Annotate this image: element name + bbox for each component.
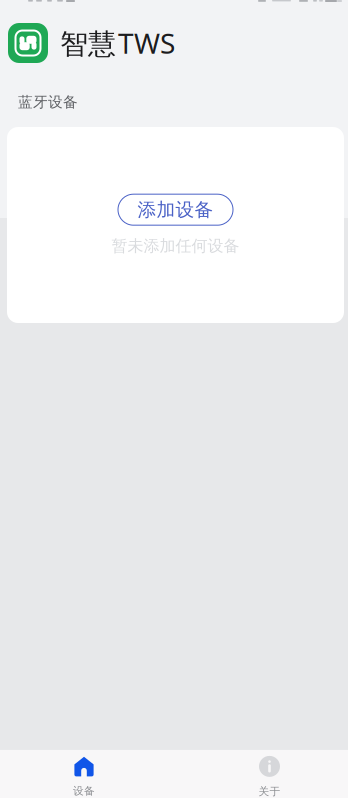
button[interactable]: 设备	[0, 756, 174, 797]
staticText: 暂未添加任何设备	[111, 236, 239, 256]
staticText: 蓝牙设备	[18, 93, 78, 111]
staticText: 设备	[73, 784, 95, 797]
staticText: 关于	[258, 785, 280, 798]
button[interactable]: 关于	[174, 756, 348, 798]
staticText: 智慧 TWS	[60, 24, 175, 62]
button[interactable]: 添加设备	[118, 194, 233, 225]
staticText: 添加设备	[137, 198, 213, 221]
